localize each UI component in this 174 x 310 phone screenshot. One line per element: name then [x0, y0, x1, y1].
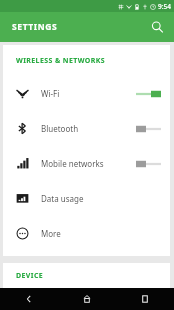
button[interactable]: Recent apps [116, 288, 174, 310]
button[interactable]: On [136, 87, 161, 101]
staticText: DEVICE [16, 271, 44, 281]
button[interactable]: More [3, 216, 170, 251]
button[interactable]: Wi-Fi [3, 76, 170, 111]
staticText: Bluetooth [41, 123, 136, 134]
button[interactable]: Bluetooth [3, 111, 170, 146]
button[interactable]: Home [58, 288, 116, 310]
staticText: SETTINGS [12, 21, 58, 33]
button[interactable]: Back [0, 288, 58, 310]
staticText: WIRELESS & NETWORKS [16, 56, 106, 66]
button[interactable]: Off [136, 122, 161, 136]
button[interactable]: Off [136, 157, 161, 171]
staticText: Data usage [41, 193, 170, 204]
staticText: More [41, 228, 170, 239]
button[interactable]: Search [146, 16, 168, 38]
staticText: 9:54 [158, 2, 171, 11]
staticText: Mobile networks [41, 158, 136, 169]
staticText: Wi-Fi [41, 88, 136, 99]
button[interactable]: Data usage [3, 181, 170, 216]
button[interactable]: Mobile networks [3, 146, 170, 181]
